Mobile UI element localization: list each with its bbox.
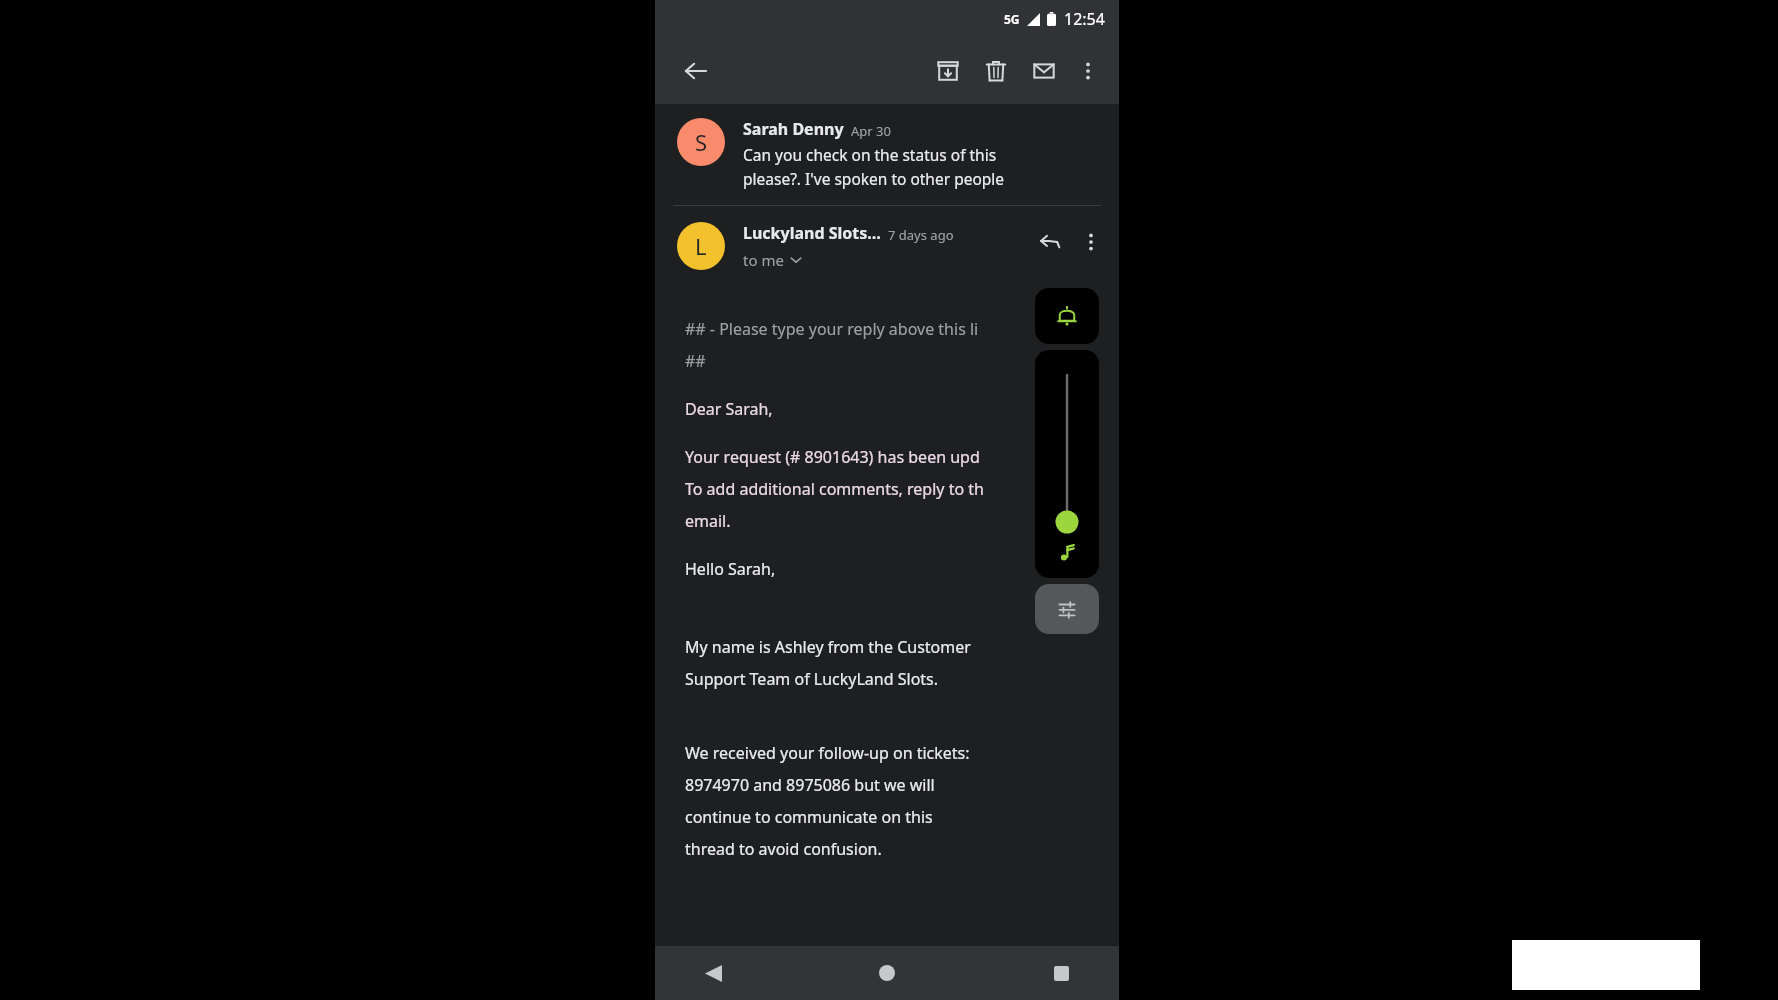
staticText: S <box>695 127 708 157</box>
staticText: My name is Ashley from the Customer <box>685 636 971 658</box>
staticText: 12:54 <box>1064 8 1105 30</box>
staticText: We received your follow-up on tickets: <box>685 742 970 764</box>
staticText: continue to communicate on this <box>685 806 933 828</box>
staticText: 5G <box>1004 11 1020 27</box>
staticText: ## - Please type your reply above this l… <box>685 318 979 340</box>
staticText: ## <box>685 350 706 372</box>
staticText: Support Team of LuckyLand Slots. <box>685 668 939 690</box>
button[interactable]: Home <box>865 951 909 995</box>
button[interactable]: S <box>655 104 1119 205</box>
staticText: thread to avoid confusion. <box>685 838 882 860</box>
button[interactable]: Ring mode <box>1035 288 1099 344</box>
button[interactable]: Delete <box>975 50 1017 92</box>
button[interactable]: Archive <box>927 50 969 92</box>
button[interactable]: Recents <box>1039 951 1083 995</box>
staticText: Sarah Denny <box>743 118 844 140</box>
staticText: 8974970 and 8975086 but we will <box>685 774 935 796</box>
staticText: please?. I've spoken to other people <box>743 168 1005 189</box>
staticText: to me <box>743 250 784 270</box>
button[interactable]: More options <box>1071 222 1111 262</box>
button[interactable]: Mark unread <box>1023 50 1065 92</box>
button[interactable]: Back <box>675 50 717 92</box>
staticText: Your request (# 8901643) has been upd <box>685 446 980 468</box>
button[interactable]: Back <box>691 951 735 995</box>
staticText: Can you check on the status of this <box>743 144 997 165</box>
staticText: Dear Sarah, <box>685 398 773 420</box>
staticText: Luckyland Slots… <box>743 222 881 244</box>
staticText: To add additional comments, reply to th <box>685 478 984 500</box>
staticText: Hello Sarah, <box>685 558 776 580</box>
button[interactable]: L <box>655 206 1119 270</box>
button[interactable]: Volume settings <box>1035 584 1099 634</box>
button[interactable]: Media volume <box>1035 350 1099 578</box>
staticText: Apr 30 <box>851 122 891 140</box>
staticText: 7 days ago <box>888 226 954 244</box>
button[interactable]: More options <box>1067 50 1109 92</box>
staticText: L <box>695 231 707 261</box>
button[interactable]: Reply <box>1031 222 1071 262</box>
staticText: email. <box>685 510 731 532</box>
